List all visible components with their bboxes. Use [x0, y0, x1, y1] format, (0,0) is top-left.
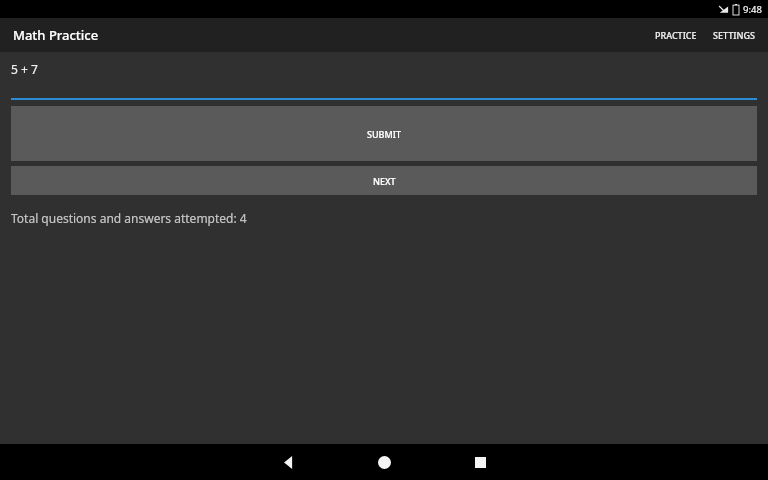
staticText: NEXT — [373, 175, 396, 187]
staticText: SETTINGS — [713, 29, 755, 41]
button[interactable]: SETTINGS — [705, 18, 763, 52]
button[interactable]: Back — [260, 444, 316, 480]
button[interactable]: PRACTICE — [647, 18, 705, 52]
staticText: Total questions and answers attempted: 4 — [11, 210, 247, 226]
staticText: Math Practice — [13, 26, 99, 44]
button[interactable]: Home — [356, 444, 412, 480]
staticText: 9:48 — [743, 3, 762, 16]
staticText: SUBMIT — [367, 128, 401, 140]
staticText: 5 + 7 — [11, 61, 38, 77]
button[interactable]: SUBMIT — [11, 106, 757, 161]
button[interactable]: NEXT — [11, 166, 757, 195]
staticText: PRACTICE — [655, 29, 697, 41]
button[interactable]: Recent apps — [452, 444, 508, 480]
